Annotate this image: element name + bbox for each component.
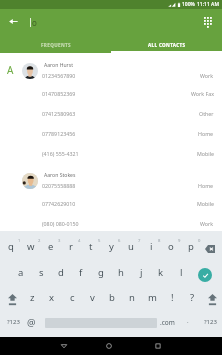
staticText: j xyxy=(140,266,143,279)
button[interactable]: x xyxy=(42,285,62,309)
button[interactable]: z xyxy=(22,285,42,309)
button[interactable]: d xyxy=(51,260,71,284)
staticText: l xyxy=(180,266,183,279)
button[interactable]: a xyxy=(11,260,31,284)
staticText: 5 xyxy=(98,238,101,244)
staticText: 07412580963 xyxy=(42,110,76,117)
button[interactable]: Backspace xyxy=(200,239,220,259)
staticText: q xyxy=(8,240,14,253)
button[interactable]: ! xyxy=(162,285,182,309)
button[interactable]: c xyxy=(62,285,82,309)
button[interactable]: Dial pad xyxy=(196,11,220,35)
staticText: h xyxy=(118,266,124,279)
staticText: p xyxy=(188,240,194,253)
button[interactable]: s xyxy=(31,260,51,284)
staticText: (416) 555-4321 xyxy=(42,150,79,157)
staticText: @ xyxy=(27,316,36,329)
button[interactable]: p xyxy=(181,234,201,258)
button[interactable]: l xyxy=(171,260,191,284)
staticText: b xyxy=(109,291,115,304)
button[interactable]: q xyxy=(1,234,21,258)
button[interactable]: (080) 080-0150 xyxy=(0,213,222,233)
button[interactable]: b xyxy=(102,285,122,309)
staticText: v xyxy=(90,291,95,304)
button[interactable]: Back xyxy=(1,9,26,34)
staticText: Aaron Stokes xyxy=(44,172,76,179)
staticText: 3 xyxy=(58,238,61,244)
button[interactable]: i xyxy=(141,234,161,258)
staticText: ?123 xyxy=(204,318,217,326)
staticText: k xyxy=(158,266,164,279)
button[interactable]: Home xyxy=(97,337,120,355)
staticText: .com xyxy=(160,318,175,327)
staticText: ? xyxy=(190,291,195,304)
button[interactable]: 07789123456 xyxy=(0,123,222,143)
staticText: z xyxy=(30,291,35,304)
button[interactable]: u xyxy=(121,234,141,258)
staticText: m xyxy=(148,291,157,304)
staticText: ALL CONTACTS xyxy=(148,42,186,48)
button[interactable]: r xyxy=(61,234,81,258)
button[interactable]: t xyxy=(81,234,101,258)
staticText: 7 xyxy=(138,238,141,244)
button[interactable]: y xyxy=(101,234,121,258)
button[interactable]: e xyxy=(41,234,61,258)
button[interactable]: w xyxy=(21,234,41,258)
button[interactable]: Recent apps xyxy=(146,337,169,355)
staticText: x xyxy=(49,291,55,304)
staticText: Home xyxy=(198,182,214,189)
staticText: FREQUENTS xyxy=(41,42,71,48)
staticText: f xyxy=(79,266,83,279)
staticText: 6 xyxy=(118,238,121,244)
button[interactable]: h xyxy=(111,260,131,284)
staticText: y xyxy=(109,240,114,253)
staticText: Mobile xyxy=(197,200,214,207)
button[interactable]: Shift xyxy=(202,286,222,310)
staticText: n xyxy=(129,291,135,304)
button[interactable]: (416) 555-4321 xyxy=(0,143,222,163)
button[interactable]: k xyxy=(151,260,171,284)
button[interactable]: A xyxy=(0,53,222,83)
button[interactable]: 01470852369 xyxy=(0,83,222,103)
button[interactable]: g xyxy=(91,260,111,284)
button[interactable]: FREQUENTS xyxy=(0,36,111,53)
staticText: A xyxy=(7,63,14,77)
staticText: Mobile xyxy=(197,150,214,157)
button[interactable]: ALL CONTACTS xyxy=(111,36,222,53)
button[interactable]: ?123 xyxy=(199,312,221,332)
button[interactable]: n xyxy=(122,285,142,309)
staticText: 2 xyxy=(38,238,41,244)
button[interactable]: o xyxy=(161,234,181,258)
staticText: 02075558888 xyxy=(42,182,76,189)
button[interactable]: 07412580963 xyxy=(0,103,222,123)
button[interactable]: j xyxy=(131,260,151,284)
staticText: 9 xyxy=(178,238,181,244)
staticText: 100% xyxy=(182,1,195,8)
button[interactable]: Enter xyxy=(194,264,215,285)
staticText: t xyxy=(89,240,93,253)
staticText: s xyxy=(39,266,44,279)
button[interactable]: ? xyxy=(182,285,202,309)
staticText: 07742629010 xyxy=(42,200,76,207)
staticText: d xyxy=(58,266,64,279)
button[interactable]: Aaron Stokes xyxy=(0,163,222,193)
button[interactable]: Shift xyxy=(2,286,22,310)
staticText: Work Fax xyxy=(191,90,214,97)
button[interactable]: m xyxy=(142,285,162,309)
button[interactable]: At sign xyxy=(22,312,40,332)
button[interactable]: v xyxy=(82,285,102,309)
button[interactable]: .com xyxy=(158,312,176,332)
staticText: ! xyxy=(171,291,174,304)
staticText: g xyxy=(98,266,104,279)
staticText: o xyxy=(32,17,37,28)
button[interactable]: ?123 xyxy=(2,312,24,332)
button[interactable]: f xyxy=(71,260,91,284)
button[interactable]: 07742629010 xyxy=(0,193,222,213)
button[interactable]: Back xyxy=(52,337,75,355)
staticText: 01234567890 xyxy=(42,72,76,79)
staticText: ?123 xyxy=(7,318,20,326)
button[interactable]: . xyxy=(181,311,194,331)
staticText: r xyxy=(69,240,73,253)
staticText: Home xyxy=(198,130,214,137)
